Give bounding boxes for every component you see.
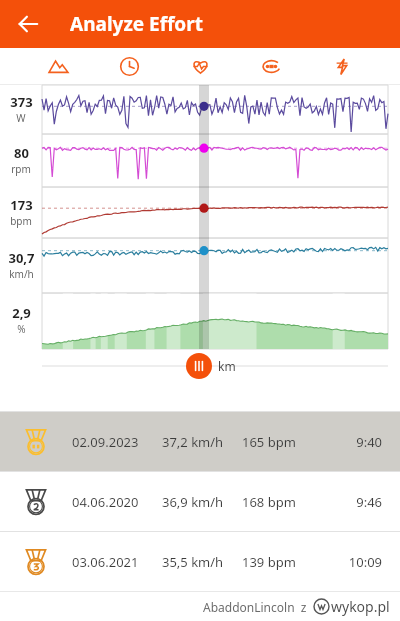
button[interactable]: Back	[8, 4, 48, 44]
staticText: 03.06.2021	[72, 553, 162, 571]
staticText: Analyze Effort	[70, 11, 203, 37]
button[interactable]: 02.09.2023	[0, 412, 400, 471]
staticText: 80	[14, 144, 29, 162]
staticText: 35,5 km/h	[162, 553, 242, 571]
staticText: 37,2 km/h	[162, 433, 242, 451]
staticText: 04.06.2020	[72, 493, 162, 511]
button[interactable]: Elevation	[22, 48, 94, 85]
staticText: km	[218, 358, 236, 374]
staticText: 10:09	[314, 553, 382, 571]
staticText: wykop.pl	[331, 597, 390, 616]
staticText: rpm	[11, 162, 31, 176]
staticText: 30,7	[8, 249, 35, 267]
button[interactable]: Scrub position	[186, 353, 212, 379]
staticText: 9:46	[314, 493, 382, 511]
button[interactable]: Time	[94, 48, 165, 85]
button[interactable]: Cadence	[236, 48, 307, 85]
staticText: bpm	[10, 214, 32, 228]
staticText: 02.09.2023	[72, 433, 162, 451]
staticText: 373	[10, 93, 33, 111]
staticText: 173	[10, 196, 33, 214]
staticText: 9:40	[314, 433, 382, 451]
button[interactable]: 04.06.2020	[0, 472, 400, 531]
button[interactable]: Power	[307, 48, 378, 85]
staticText: 165 bpm	[242, 433, 314, 451]
staticText: AbaddonLincoln z	[203, 599, 307, 615]
button[interactable]: Heart rate	[165, 48, 236, 85]
staticText: W	[16, 111, 26, 125]
staticText: 2,9	[12, 304, 31, 322]
staticText: 139 bpm	[242, 553, 314, 571]
staticText: %	[17, 322, 26, 336]
button[interactable]: 03.06.2021	[0, 532, 400, 591]
staticText: 36,9 km/h	[162, 493, 242, 511]
staticText: km/h	[9, 267, 34, 281]
staticText: 168 bpm	[242, 493, 314, 511]
